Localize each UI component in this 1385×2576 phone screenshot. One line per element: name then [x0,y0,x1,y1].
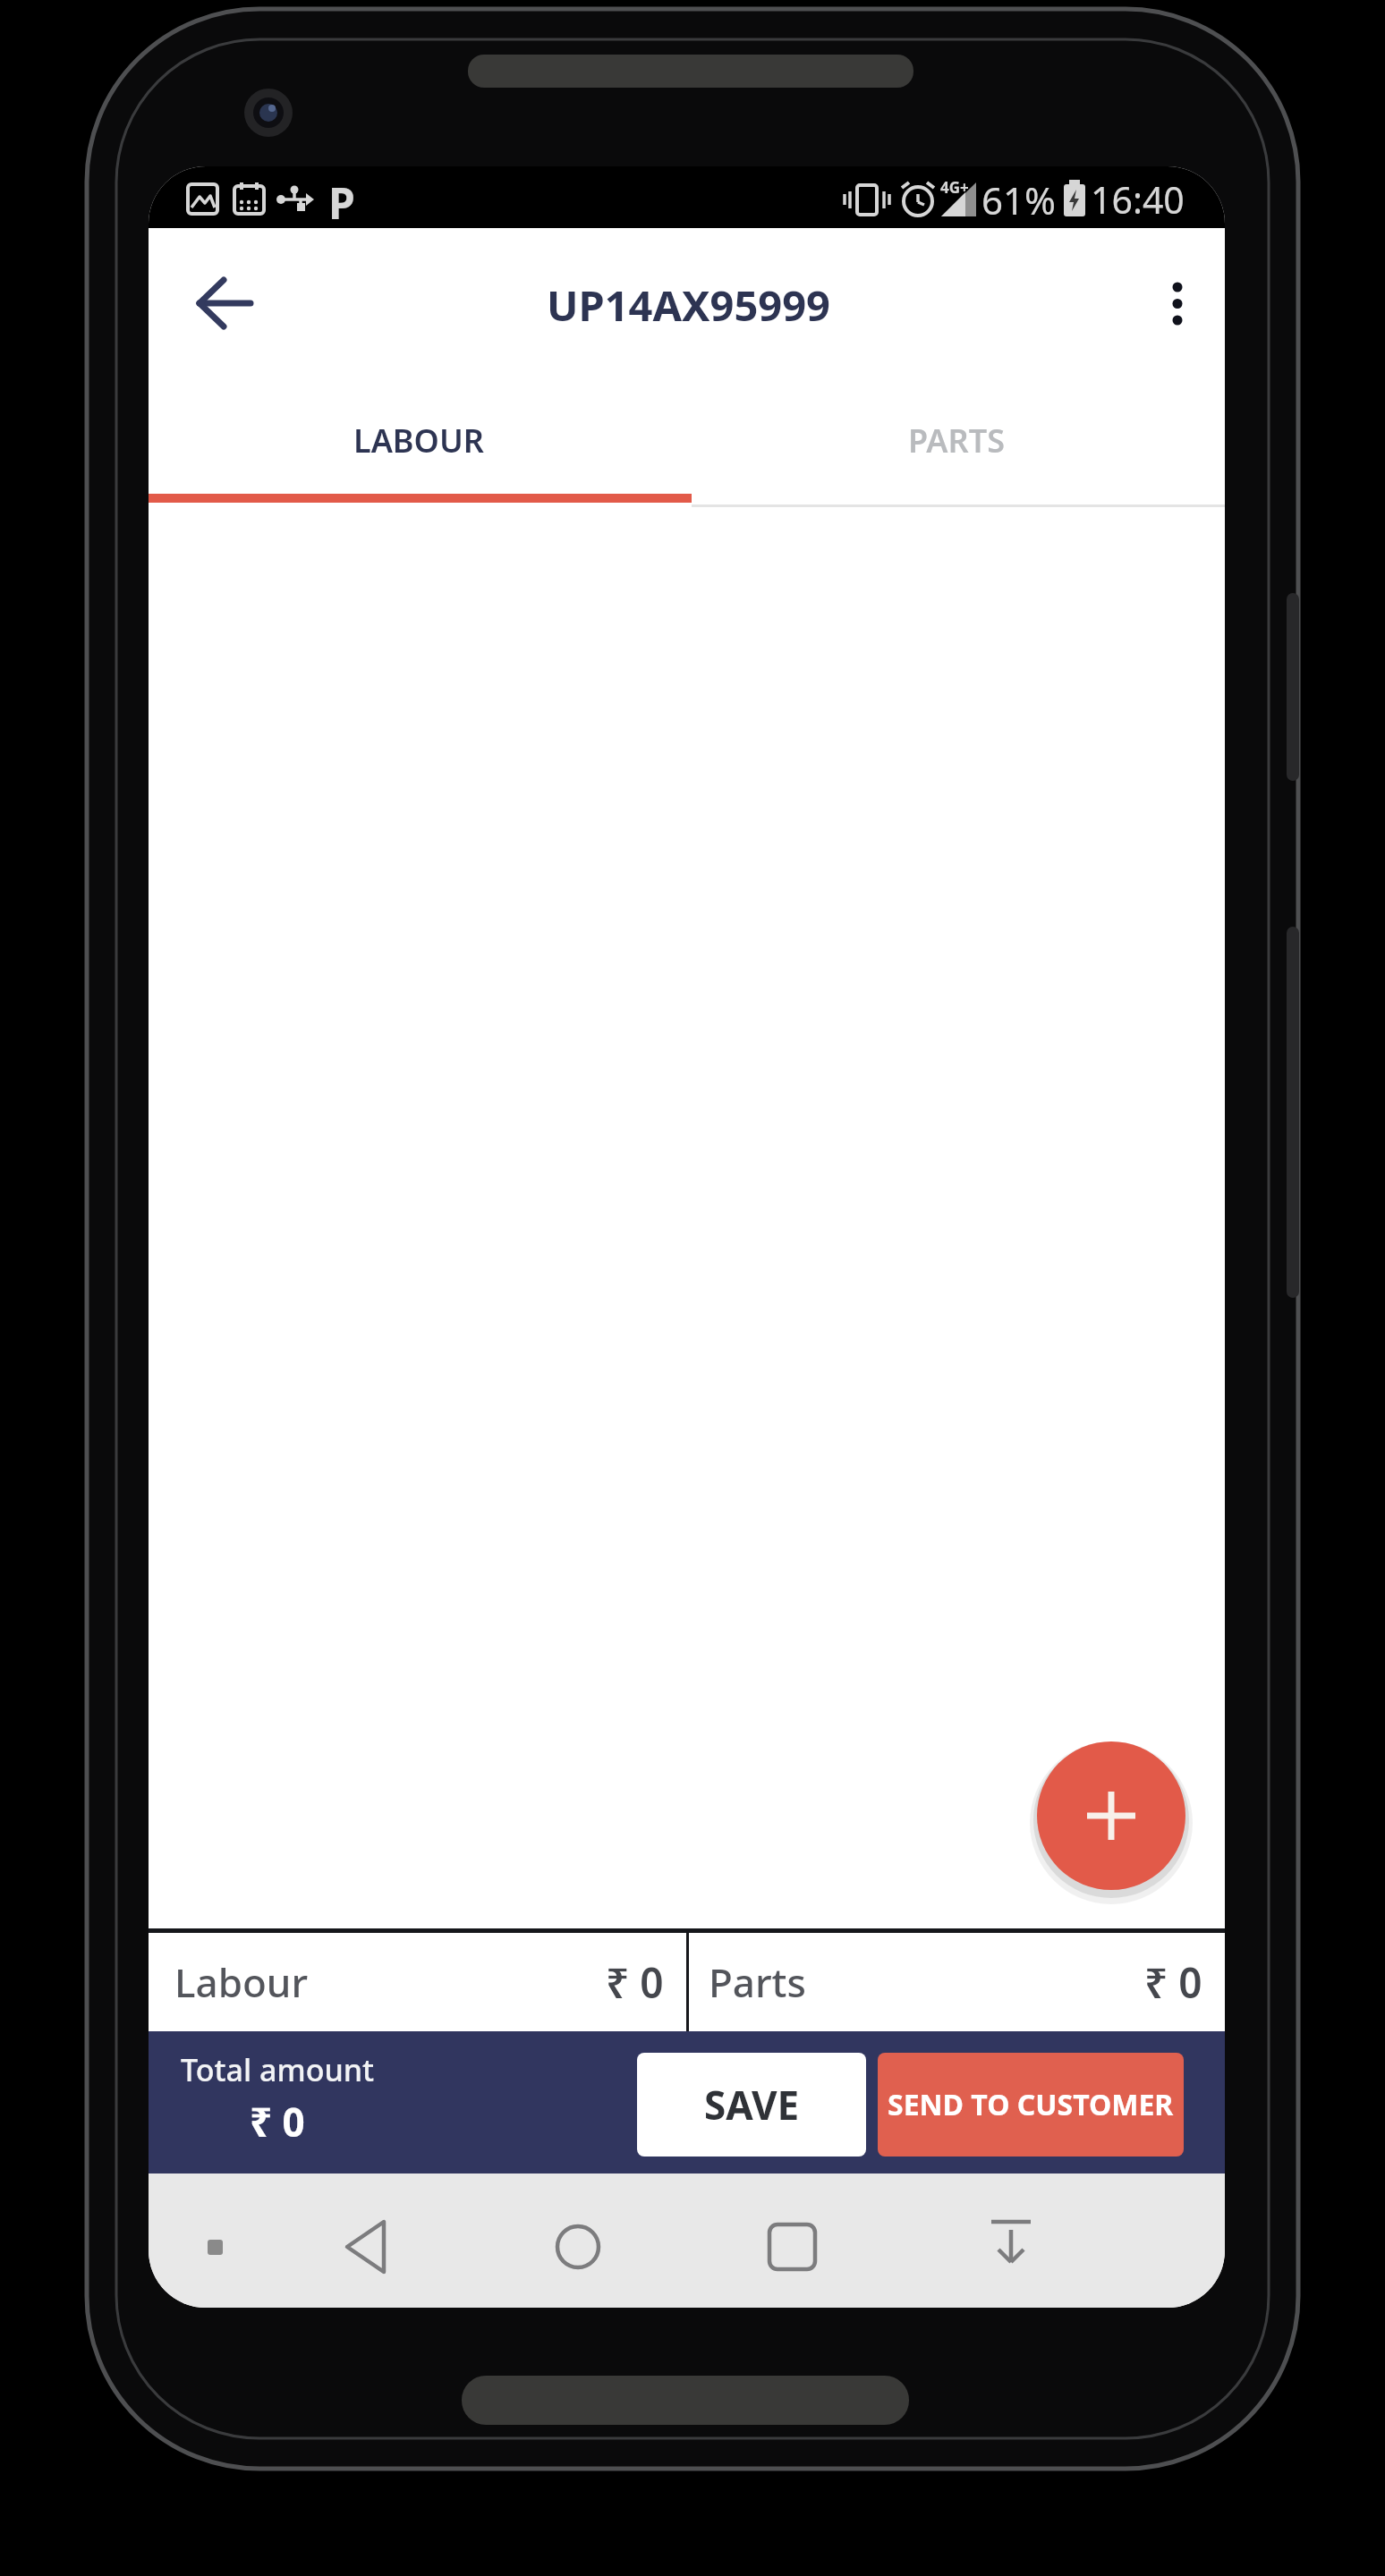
staticText: Parts [709,1955,806,2009]
button[interactable]: SEND TO CUSTOMER [878,2053,1184,2157]
staticText: UP14AX95999 [547,276,830,328]
staticText: ₹ 0 [606,1954,664,2011]
button[interactable] [1145,271,1210,335]
staticText: PARTS [908,419,1005,462]
staticText: Labour [174,1955,309,2009]
button[interactable] [184,263,265,343]
staticText: 61% [981,174,1056,223]
button[interactable]: LABOUR [283,412,555,468]
staticText: ₹ 0 [250,2095,305,2138]
button[interactable] [1037,1741,1185,1890]
button[interactable]: PARTS [820,412,1092,468]
staticText: Total amount [181,2049,375,2090]
staticText: 4G+ [940,177,969,193]
staticText: P [328,174,355,227]
button[interactable] [336,2213,395,2281]
staticText: 16:40 [1091,174,1185,223]
staticText: SEND TO CUSTOMER [888,2085,1174,2124]
staticText: LABOUR [353,419,484,462]
button[interactable]: SAVE [637,2053,866,2157]
button[interactable] [549,2218,607,2275]
button[interactable] [764,2219,821,2276]
button[interactable] [984,2215,1038,2274]
staticText: SAVE [704,2078,800,2131]
staticText: ₹ 0 [1144,1954,1202,2011]
button[interactable] [200,2233,229,2261]
